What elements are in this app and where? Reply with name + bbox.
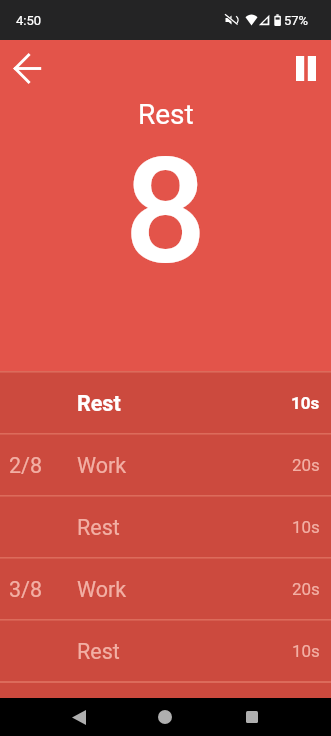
staticText: 8 [124,127,207,298]
button[interactable]: Pause [275,40,331,96]
button[interactable]: 2/8 [0,435,331,495]
button[interactable]: Rest [0,373,331,433]
staticText: Work [77,577,127,602]
button[interactable]: Back [0,40,56,96]
staticText: 10s [292,517,320,537]
button[interactable]: Recent apps [230,698,274,736]
staticText: 4:50 [16,13,42,28]
staticText: 10s [292,641,320,661]
button[interactable]: Back [57,698,101,736]
staticText: 2/8 [9,453,43,478]
staticText: 57% [284,13,309,28]
button[interactable]: Home [143,698,187,736]
staticText: 20s [292,455,320,475]
staticText: Rest [77,639,120,664]
staticText: 3/8 [9,577,43,602]
staticText: Rest [138,98,194,131]
button[interactable]: Rest [0,621,331,681]
staticText: 20s [292,579,320,599]
staticText: 10s [291,393,320,413]
staticText: Rest [77,515,120,540]
button[interactable]: Rest [0,497,331,557]
staticText: Rest [77,391,121,416]
staticText: Work [77,453,127,478]
button[interactable]: 3/8 [0,559,331,619]
